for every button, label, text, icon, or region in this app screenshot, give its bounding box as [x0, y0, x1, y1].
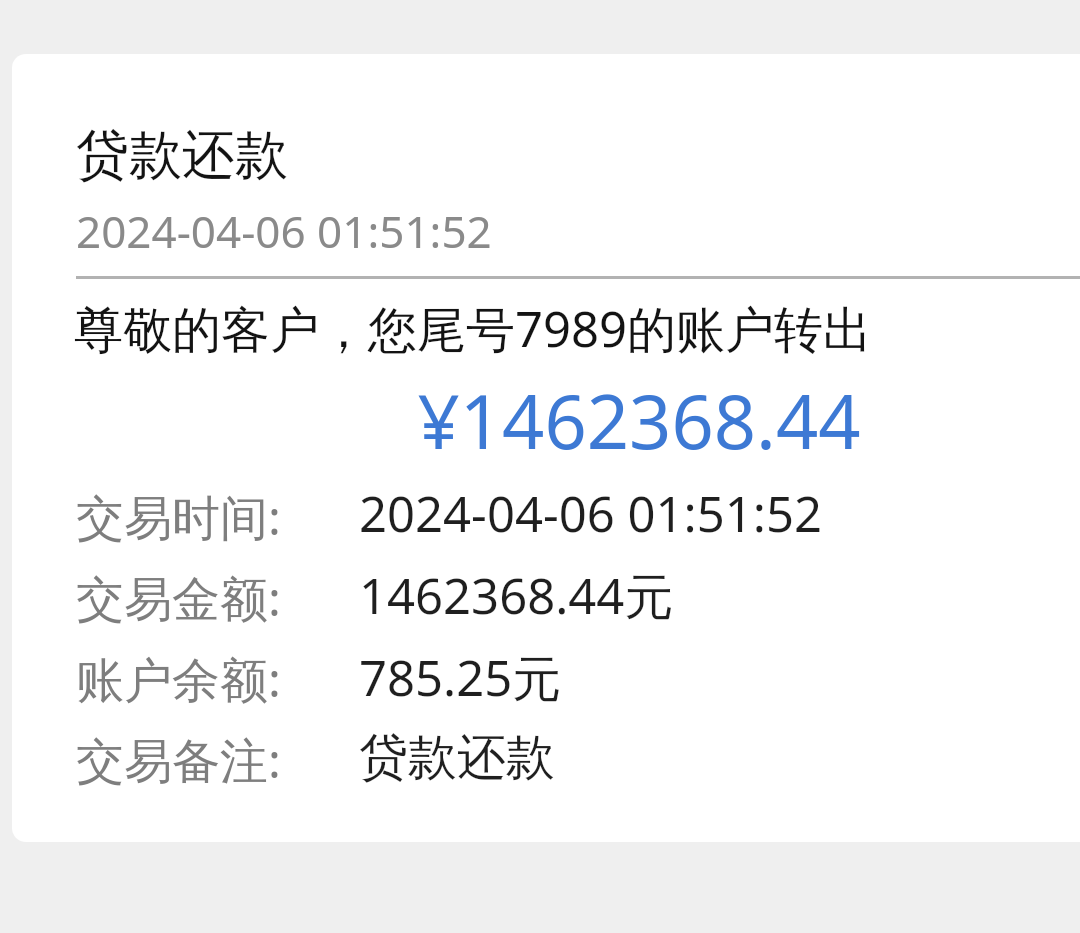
button[interactable]: 账户余额:: [76, 646, 976, 716]
staticText: 2024-04-06 01:51:52: [359, 480, 822, 547]
button[interactable]: 交易备注:: [76, 727, 976, 797]
button[interactable]: 贷款还款 交易通知: [12, 54, 1080, 842]
staticText: 尊敬的客户，您尾号7989的账户转出: [74, 295, 873, 362]
staticText: 交易时间:: [76, 484, 281, 554]
staticText: 2024-04-06 01:51:52: [76, 201, 492, 261]
staticText: 交易备注:: [76, 727, 281, 797]
staticText: 785.25元: [359, 644, 562, 711]
button[interactable]: 交易时间:: [76, 484, 976, 554]
staticText: 贷款还款: [76, 122, 288, 189]
staticText: 账户余额:: [76, 646, 281, 716]
staticText: 贷款还款: [359, 727, 555, 789]
staticText: 1462368.44元: [359, 562, 674, 629]
button[interactable]: 交易金额:: [76, 565, 976, 635]
staticText: 交易金额:: [76, 565, 281, 635]
staticText: ¥1462368.44: [189, 370, 1080, 471]
